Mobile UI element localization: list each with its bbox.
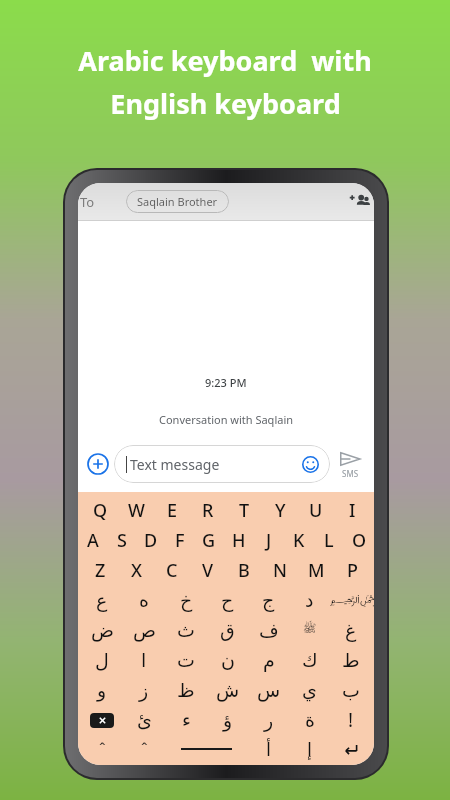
button[interactable]: Shift xyxy=(123,735,165,763)
button[interactable]: Text message xyxy=(114,445,330,483)
button[interactable]: ﷺ xyxy=(289,615,330,645)
button[interactable]: J xyxy=(254,525,284,555)
button[interactable]: O xyxy=(344,525,374,555)
button[interactable]: Y xyxy=(262,495,298,525)
button[interactable]: ؤ xyxy=(207,705,248,735)
button[interactable]: ة xyxy=(289,705,330,735)
button[interactable]: Q xyxy=(82,495,118,525)
button[interactable]: X xyxy=(118,555,154,585)
staticText: B xyxy=(238,558,250,583)
button[interactable]: ر xyxy=(248,705,289,735)
button[interactable]: Saqlain Brother xyxy=(126,190,229,213)
button[interactable]: Add attachment xyxy=(82,448,114,480)
staticText: O xyxy=(352,528,367,553)
button[interactable]: A xyxy=(78,525,107,555)
button[interactable]: H xyxy=(224,525,254,555)
button[interactable]: B xyxy=(226,555,262,585)
button[interactable]: ظ xyxy=(165,675,207,705)
button[interactable]: ث xyxy=(165,615,207,645)
staticText: ض xyxy=(91,619,114,641)
button[interactable]: ف xyxy=(248,615,289,645)
staticText: ل xyxy=(95,649,109,671)
button[interactable]: س xyxy=(248,675,289,705)
button[interactable]: ت xyxy=(165,645,207,675)
staticText: ئ xyxy=(137,709,152,731)
staticText: ح xyxy=(221,589,234,611)
button[interactable]: ك xyxy=(289,645,330,675)
button[interactable]: غ xyxy=(330,615,371,645)
button[interactable]: Emoji xyxy=(298,452,322,476)
button[interactable]: P xyxy=(334,555,370,585)
button[interactable]: C xyxy=(154,555,190,585)
button[interactable]: م xyxy=(248,645,289,675)
button[interactable]: ع xyxy=(81,585,123,615)
button[interactable]: ن xyxy=(207,645,248,675)
staticText: E xyxy=(167,498,178,523)
staticText: ك xyxy=(302,649,318,671)
staticText: أ xyxy=(266,739,272,760)
button[interactable]: T xyxy=(226,495,262,525)
button[interactable]: K xyxy=(284,525,314,555)
button[interactable]: I xyxy=(334,495,370,525)
staticText: س xyxy=(257,679,281,701)
staticText: S xyxy=(117,528,127,553)
button[interactable]: N xyxy=(262,555,298,585)
button[interactable]: ل xyxy=(81,645,123,675)
staticText: ˆ xyxy=(99,738,106,760)
staticText: A xyxy=(87,528,99,553)
button[interactable]: ق xyxy=(207,615,248,645)
button[interactable]: E xyxy=(154,495,190,525)
button[interactable]: ئ xyxy=(123,705,165,735)
button[interactable]: U xyxy=(298,495,334,525)
button[interactable]: S xyxy=(107,525,136,555)
button[interactable]: L xyxy=(314,525,344,555)
button[interactable]: خ xyxy=(165,585,207,615)
button[interactable]: و xyxy=(81,675,123,705)
button[interactable]: ب xyxy=(330,675,371,705)
button[interactable]: ا xyxy=(123,645,165,675)
staticText: ﷺ xyxy=(303,622,317,638)
button[interactable]: Add people xyxy=(344,187,374,217)
staticText: U xyxy=(309,498,323,523)
button[interactable]: ش xyxy=(207,675,248,705)
staticText: إ xyxy=(307,739,313,760)
button[interactable]: Z xyxy=(82,555,118,585)
button[interactable]: أ xyxy=(248,735,289,763)
button[interactable]: R xyxy=(190,495,226,525)
button[interactable]: ء xyxy=(165,705,207,735)
staticText: ا xyxy=(141,649,147,671)
button[interactable]: ! xyxy=(330,705,371,735)
button[interactable]: ج xyxy=(248,585,289,615)
button[interactable]: V xyxy=(190,555,226,585)
staticText: Z xyxy=(95,558,106,583)
staticText: D xyxy=(144,528,158,553)
staticText: H xyxy=(232,528,246,553)
button[interactable]: Enter xyxy=(330,735,371,763)
button[interactable]: Backspace xyxy=(81,705,123,735)
staticText: K xyxy=(293,528,305,553)
staticText: ز xyxy=(139,679,149,701)
button[interactable]: F xyxy=(165,525,194,555)
button[interactable]: إ xyxy=(289,735,330,763)
staticText: ث xyxy=(177,619,195,641)
button[interactable]: ص xyxy=(123,615,165,645)
button[interactable]: ﷽ xyxy=(330,585,371,615)
button[interactable]: Space xyxy=(165,735,248,763)
button[interactable]: W xyxy=(118,495,154,525)
staticText: To xyxy=(80,193,95,211)
button[interactable]: ض xyxy=(81,615,123,645)
button[interactable]: ه xyxy=(123,585,165,615)
button[interactable]: M xyxy=(298,555,334,585)
button[interactable]: ز xyxy=(123,675,165,705)
button[interactable]: D xyxy=(136,525,165,555)
staticText: و xyxy=(97,679,107,701)
button[interactable]: Send SMS xyxy=(330,450,370,479)
button[interactable]: Shift xyxy=(81,735,123,763)
button[interactable]: ي xyxy=(289,675,330,705)
button[interactable]: ط xyxy=(330,645,371,675)
button[interactable]: د xyxy=(289,585,330,615)
button[interactable]: ح xyxy=(207,585,248,615)
staticText: English keyboard xyxy=(110,85,341,122)
staticText: ! xyxy=(348,707,354,733)
button[interactable]: G xyxy=(194,525,224,555)
